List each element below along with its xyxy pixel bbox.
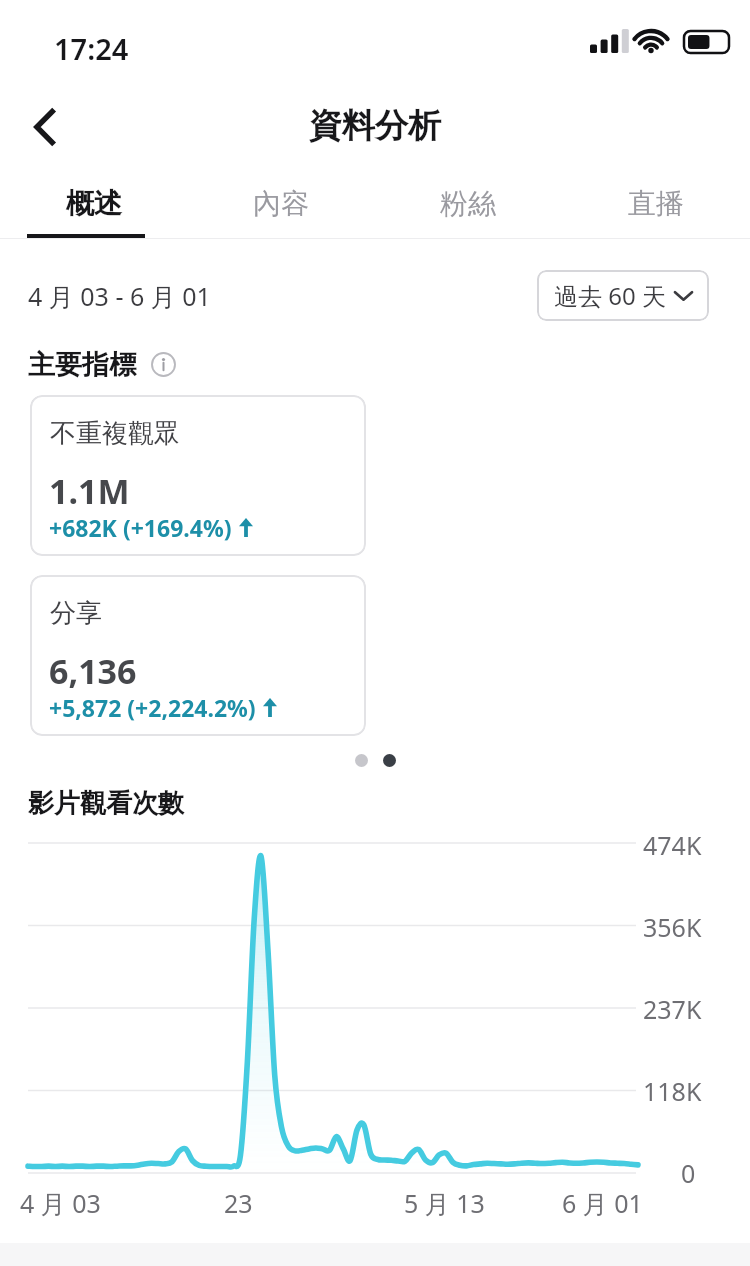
staticText: 23 bbox=[224, 1186, 253, 1220]
staticText: 不重複觀眾 bbox=[50, 417, 180, 450]
button[interactable]: 概述 bbox=[0, 168, 187, 238]
button[interactable]: Info bbox=[148, 349, 178, 379]
button[interactable]: 過去 60 天 bbox=[537, 270, 709, 321]
button[interactable]: 直播 bbox=[562, 168, 750, 238]
staticText: 6,136 bbox=[49, 648, 137, 694]
staticText: 237K bbox=[643, 992, 702, 1026]
staticText: 118K bbox=[643, 1074, 702, 1108]
staticText: 主要指標 bbox=[28, 348, 136, 382]
button[interactable]: 不重複觀眾 bbox=[30, 395, 366, 556]
staticText: 概述 bbox=[66, 186, 122, 221]
staticText: 5 月 13 bbox=[404, 1186, 485, 1220]
staticText: 474K bbox=[643, 828, 702, 862]
staticText: 影片觀看次數 bbox=[28, 787, 184, 820]
staticText: 4 月 03 bbox=[20, 1186, 101, 1220]
staticText: 資料分析 bbox=[309, 105, 441, 147]
staticText: 直播 bbox=[628, 186, 684, 221]
staticText: 1.1M bbox=[49, 468, 130, 514]
staticText: +5,872 (+2,224.2%) bbox=[49, 692, 256, 723]
staticText: 356K bbox=[643, 910, 702, 944]
staticText: +682K (+169.4%) bbox=[49, 512, 232, 543]
staticText: 過去 60 天 bbox=[554, 279, 666, 312]
button[interactable]: 內容 bbox=[187, 168, 374, 238]
staticText: 粉絲 bbox=[440, 186, 496, 221]
staticText: 17:24 bbox=[54, 29, 129, 68]
button[interactable]: 分享 bbox=[30, 575, 366, 736]
staticText: 內容 bbox=[253, 186, 309, 221]
button[interactable]: Back bbox=[8, 92, 78, 162]
staticText: 分享 bbox=[50, 597, 102, 630]
staticText: 4 月 03 - 6 月 01 bbox=[28, 279, 211, 313]
button[interactable]: 粉絲 bbox=[374, 168, 562, 238]
staticText: 6 月 01 bbox=[562, 1186, 643, 1220]
staticText: 0 bbox=[681, 1156, 696, 1190]
